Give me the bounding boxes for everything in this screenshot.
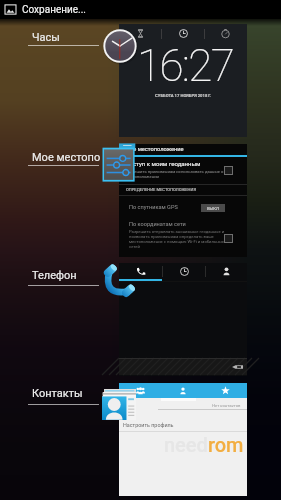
button[interactable]: Телефон <box>32 269 104 282</box>
staticText: Доступ к моим геоданным <box>125 160 201 167</box>
staticText: По спутникам GPS <box>129 204 178 211</box>
staticText: 16:27 <box>137 40 234 92</box>
button[interactable] <box>224 234 233 243</box>
button[interactable]: Часы <box>32 31 104 44</box>
staticText: Нет контактов <box>212 403 241 408</box>
staticText: По координатам сети <box>129 221 186 228</box>
staticText: Часы <box>32 31 60 44</box>
staticText: СУББОТА 17 НОЯБРЯ 2018 Г. <box>119 93 247 98</box>
button[interactable] <box>119 263 247 376</box>
button[interactable]: Настройки <box>102 143 136 182</box>
button[interactable]: Мое местоположение <box>119 144 247 257</box>
staticText: ВЫКЛ <box>207 206 219 211</box>
staticText: Разрешить приложениям использовать данны… <box>125 169 224 179</box>
button[interactable]: Часы <box>103 29 137 63</box>
staticText: Контакты <box>32 387 83 400</box>
button[interactable]: Контакты <box>102 389 136 420</box>
button[interactable]: Нет контактов <box>119 383 247 496</box>
button[interactable]: Мое местоположение <box>32 151 104 164</box>
staticText: rom <box>208 433 244 456</box>
button[interactable]: ВЫКЛ <box>201 204 225 212</box>
button[interactable] <box>224 166 233 175</box>
staticText: need <box>164 433 208 456</box>
staticText: Мое местоположение <box>32 151 104 164</box>
staticText: Сохранение... <box>22 4 86 16</box>
staticText: ОПРЕДЕЛЕНИЕ МЕСТОПОЛОЖЕНИЯ <box>126 187 197 192</box>
button[interactable]: 16:27 <box>119 24 247 137</box>
staticText: Разрешить отправлять анонимные геоданные… <box>129 229 225 249</box>
button[interactable]: Контакты <box>32 387 104 400</box>
staticText: Настроить профиль <box>123 422 174 428</box>
staticText: Мое местоположение <box>125 146 184 153</box>
staticText: Телефон <box>32 269 77 282</box>
button[interactable]: Телефон <box>101 264 136 299</box>
